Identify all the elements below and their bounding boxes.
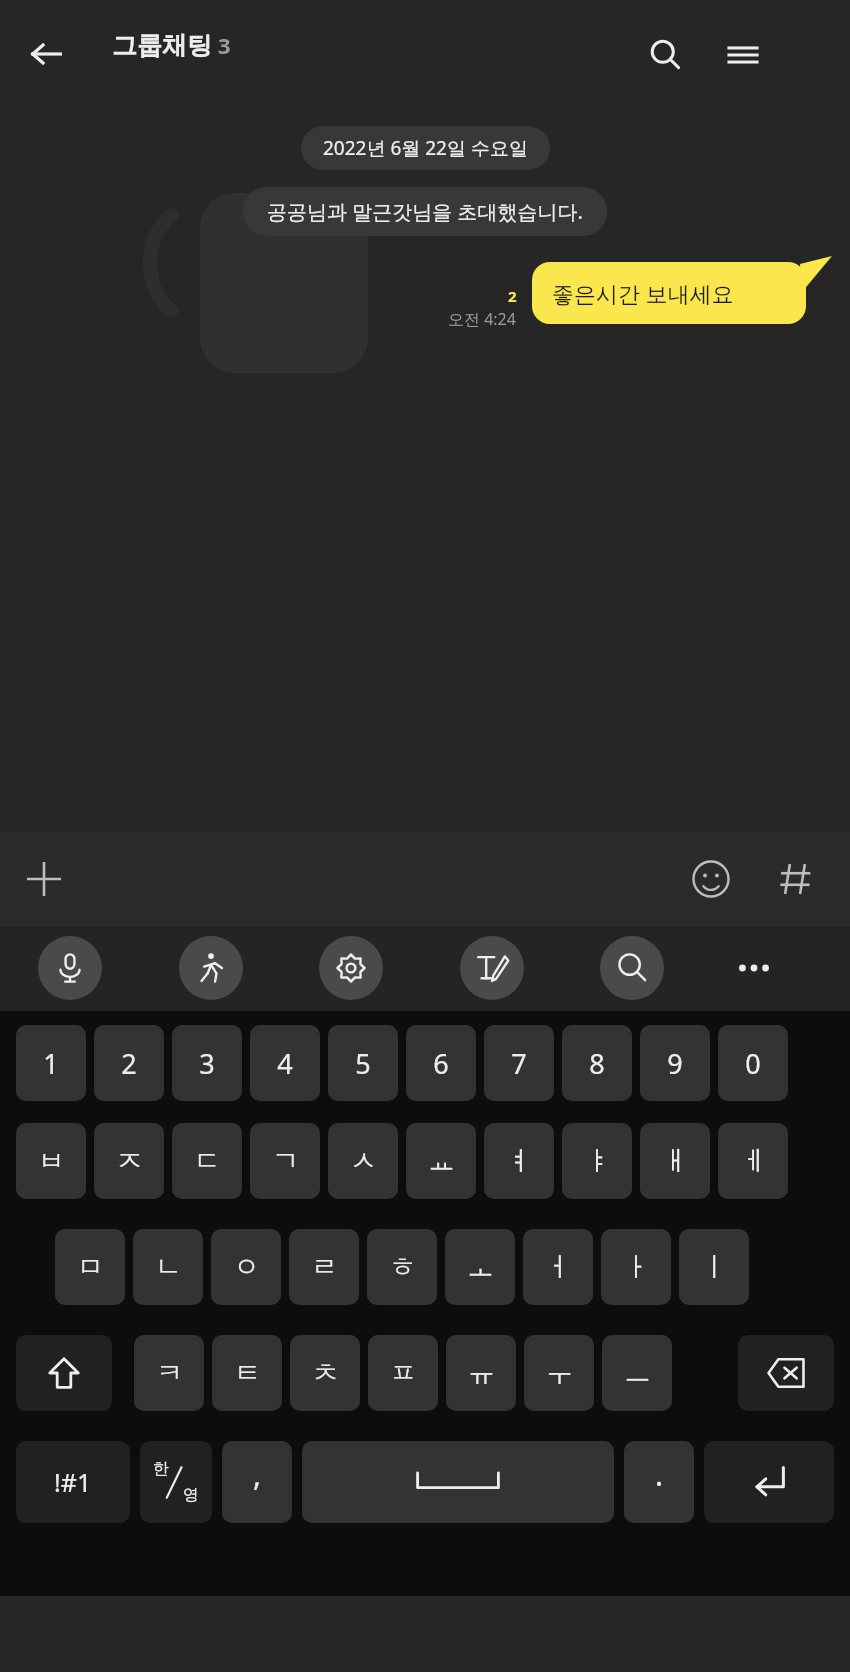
button[interactable]: Back — [20, 28, 72, 80]
button[interactable]: ㅏ — [601, 1229, 671, 1305]
button[interactable]: Search — [600, 936, 664, 1000]
button[interactable]: ㅎ — [367, 1229, 437, 1305]
button[interactable]: ㅕ — [484, 1123, 554, 1199]
button[interactable]: Backspace — [738, 1335, 834, 1411]
button[interactable]: ㅅ — [328, 1123, 398, 1199]
button[interactable]: 0 — [718, 1025, 788, 1101]
staticText: ㅌ — [234, 1356, 261, 1390]
staticText: 8 — [589, 1045, 605, 1082]
button[interactable]: ㅁ — [55, 1229, 125, 1305]
button[interactable]: ㄴ — [133, 1229, 203, 1305]
staticText: ㄷ — [194, 1144, 221, 1178]
button[interactable]: Hashtag — [766, 849, 826, 909]
staticText: ㅏ — [623, 1250, 650, 1284]
button[interactable]: ㅈ — [94, 1123, 164, 1199]
staticText: ㅜ — [546, 1356, 573, 1390]
staticText: 한 — [153, 1459, 169, 1479]
button[interactable]: Space — [302, 1441, 614, 1523]
staticText: ㅊ — [312, 1356, 339, 1390]
staticText: 5 — [355, 1045, 371, 1082]
staticText: 3 — [218, 30, 231, 60]
button[interactable]: , — [222, 1441, 292, 1523]
button[interactable]: ㅌ — [212, 1335, 282, 1411]
staticText: ㅔ — [740, 1144, 767, 1178]
button[interactable]: 3 — [172, 1025, 242, 1101]
staticText: ㅂ — [38, 1144, 65, 1178]
button[interactable]: ㅋ — [134, 1335, 204, 1411]
staticText: ㅋ — [156, 1356, 183, 1390]
staticText: ㅈ — [116, 1144, 143, 1178]
button[interactable]: 한 — [140, 1441, 212, 1523]
staticText: ㅓ — [545, 1250, 572, 1284]
button[interactable]: Emoticon — [680, 848, 742, 910]
staticText: 3 — [199, 1045, 215, 1082]
staticText: ㅎ — [389, 1250, 416, 1284]
button[interactable]: 4 — [250, 1025, 320, 1101]
button[interactable]: Search — [638, 28, 692, 82]
button[interactable]: Add attachment — [12, 847, 76, 911]
staticText: ㄱ — [272, 1144, 299, 1178]
button[interactable]: ㅠ — [446, 1335, 516, 1411]
staticText: ㅇ — [233, 1250, 260, 1284]
button[interactable]: ㅇ — [211, 1229, 281, 1305]
staticText: ㅁ — [77, 1250, 104, 1284]
staticText: . — [655, 1454, 664, 1495]
button[interactable]: 2 — [94, 1025, 164, 1101]
button[interactable]: Enter — [704, 1441, 834, 1523]
staticText: 1 — [43, 1045, 59, 1082]
button[interactable]: ㅍ — [368, 1335, 438, 1411]
staticText: ㅠ — [468, 1356, 495, 1390]
staticText: 2 — [508, 286, 517, 306]
button[interactable]: Motion — [179, 936, 243, 1000]
button[interactable]: 5 — [328, 1025, 398, 1101]
button[interactable]: ㅑ — [562, 1123, 632, 1199]
button[interactable]: Settings — [319, 936, 383, 1000]
staticText: ㅗ — [467, 1250, 494, 1284]
staticText: 2 — [121, 1045, 137, 1082]
button[interactable]: Voice input — [38, 936, 102, 1000]
staticText: ㅍ — [390, 1356, 417, 1390]
button[interactable]: Shift — [16, 1335, 112, 1411]
staticText: , — [253, 1454, 262, 1495]
button[interactable]: More options — [722, 936, 786, 1000]
staticText: ㅣ — [701, 1250, 728, 1284]
button[interactable]: ㄱ — [250, 1123, 320, 1199]
button[interactable]: . — [624, 1441, 694, 1523]
button[interactable]: ㄷ — [172, 1123, 242, 1199]
button[interactable]: ㅜ — [524, 1335, 594, 1411]
staticText: 공공님과 말근갓님을 초대했습니다. — [267, 198, 583, 225]
staticText: 영 — [183, 1485, 199, 1505]
staticText: !#1 — [54, 1465, 92, 1499]
button[interactable]: ㅔ — [718, 1123, 788, 1199]
staticText: ㄹ — [311, 1250, 338, 1284]
staticText: 6 — [433, 1045, 449, 1082]
staticText: 좋은시간 보내세요 — [552, 278, 734, 308]
button[interactable]: 1 — [16, 1025, 86, 1101]
button[interactable]: ㅊ — [290, 1335, 360, 1411]
button[interactable]: 8 — [562, 1025, 632, 1101]
staticText: ㅡ — [624, 1356, 651, 1390]
button[interactable]: ㄹ — [289, 1229, 359, 1305]
button[interactable]: Menu — [716, 28, 770, 82]
staticText: 9 — [667, 1045, 683, 1082]
staticText: ㅅ — [350, 1144, 377, 1178]
staticText: ㅛ — [428, 1144, 455, 1178]
button[interactable]: 7 — [484, 1025, 554, 1101]
staticText: ㄴ — [155, 1250, 182, 1284]
button[interactable]: 6 — [406, 1025, 476, 1101]
button[interactable]: ㅗ — [445, 1229, 515, 1305]
button[interactable]: ㅛ — [406, 1123, 476, 1199]
staticText: 2022년 6월 22일 수요일 — [323, 135, 528, 161]
staticText: 그룹채팅 — [112, 30, 212, 61]
button[interactable]: !#1 — [16, 1441, 130, 1523]
button[interactable]: ㅂ — [16, 1123, 86, 1199]
button[interactable]: 9 — [640, 1025, 710, 1101]
button[interactable]: Handwriting — [460, 936, 524, 1000]
button[interactable]: ㅡ — [602, 1335, 672, 1411]
button[interactable]: ㅓ — [523, 1229, 593, 1305]
button[interactable]: 좋은시간 보내세요 — [532, 262, 822, 324]
button[interactable]: ㅐ — [640, 1123, 710, 1199]
staticText: 오전 4:24 — [448, 308, 516, 330]
staticText: 7 — [511, 1045, 527, 1082]
button[interactable]: ㅣ — [679, 1229, 749, 1305]
